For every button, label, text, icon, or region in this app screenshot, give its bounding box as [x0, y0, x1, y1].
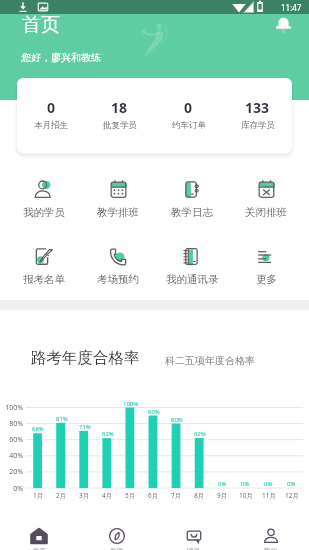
staticText: 68% [32, 425, 44, 433]
staticText: 教学排班 [97, 206, 139, 219]
staticText: 库存学员 [241, 120, 275, 131]
staticText: 7月 [171, 491, 182, 500]
staticText: 100% [123, 400, 139, 408]
staticText: 0% [218, 480, 227, 488]
button[interactable]: 教学排班 [81, 176, 155, 219]
button[interactable]: 报考名单 [6, 243, 81, 286]
staticText: 40% [0, 451, 23, 461]
staticText: 18 [111, 98, 128, 117]
button[interactable]: 考场预约 [81, 243, 155, 286]
staticText: 2月 [56, 491, 67, 500]
staticText: 12月 [285, 491, 299, 500]
button[interactable]: 更多 [229, 243, 303, 286]
staticText: 0% [287, 480, 296, 488]
staticText: 11:47 [281, 2, 302, 13]
staticText: 0 [184, 98, 193, 117]
staticText: 80% [0, 419, 23, 429]
button[interactable]: 我的通讯录 [155, 243, 229, 286]
staticText: 62% [194, 430, 206, 438]
staticText: 90% [148, 408, 160, 416]
button[interactable]: 133 [223, 78, 292, 153]
staticText: 0% [0, 484, 23, 494]
staticText: 8月 [194, 491, 205, 500]
button[interactable]: 我的学员 [6, 176, 81, 219]
staticText: 报考名单 [23, 273, 65, 286]
staticText: 6月 [148, 491, 159, 500]
staticText: 教学日志 [171, 206, 213, 219]
staticText: 133 [245, 98, 270, 117]
button[interactable]: 科二五项年度合格率 [165, 354, 255, 368]
staticText: 更多 [256, 273, 277, 286]
button[interactable]: Home [0, 506, 78, 550]
button[interactable]: Profile [232, 506, 309, 550]
staticText: 0 [47, 98, 56, 117]
staticText: 我的学员 [23, 206, 65, 219]
button[interactable]: 关闭排班 [229, 176, 303, 219]
staticText: 10月 [239, 491, 253, 500]
staticText: 发现 [110, 547, 123, 550]
button[interactable]: Notifications [275, 14, 292, 31]
button[interactable]: 0 [154, 78, 223, 153]
staticText: 批复学员 [103, 120, 137, 131]
staticText: 71% [79, 423, 91, 431]
button[interactable]: 0 [17, 78, 85, 153]
staticText: 20% [0, 467, 23, 477]
staticText: 考场预约 [97, 273, 139, 286]
staticText: 首页 [22, 13, 60, 37]
staticText: 我的通讯录 [166, 273, 219, 286]
button[interactable]: Discover [78, 506, 155, 550]
staticText: 关闭排班 [245, 206, 287, 219]
staticText: 首页 [33, 547, 46, 550]
staticText: 0% [264, 480, 273, 488]
staticText: 1月 [33, 491, 44, 500]
staticText: 5月 [125, 491, 136, 500]
staticText: 我的 [264, 547, 277, 550]
staticText: 11月 [262, 491, 276, 500]
staticText: 本月招生 [34, 120, 68, 131]
staticText: 3月 [79, 491, 90, 500]
staticText: 约车订单 [172, 120, 206, 131]
button[interactable]: 路考年度合格率 [31, 348, 140, 368]
staticText: 80% [171, 416, 183, 424]
staticText: 消息 [187, 547, 200, 550]
staticText: 81% [56, 415, 68, 423]
staticText: 您好，廖兴和教练 [21, 51, 101, 64]
staticText: 100% [0, 403, 23, 413]
button[interactable]: 18 [85, 78, 154, 153]
staticText: 60% [0, 435, 23, 445]
staticText: 0% [241, 480, 250, 488]
staticText: 4月 [102, 491, 113, 500]
staticText: 9月 [217, 491, 228, 500]
staticText: 62% [102, 430, 114, 438]
button[interactable]: Messages [155, 506, 232, 550]
button[interactable]: 教学日志 [155, 176, 229, 219]
